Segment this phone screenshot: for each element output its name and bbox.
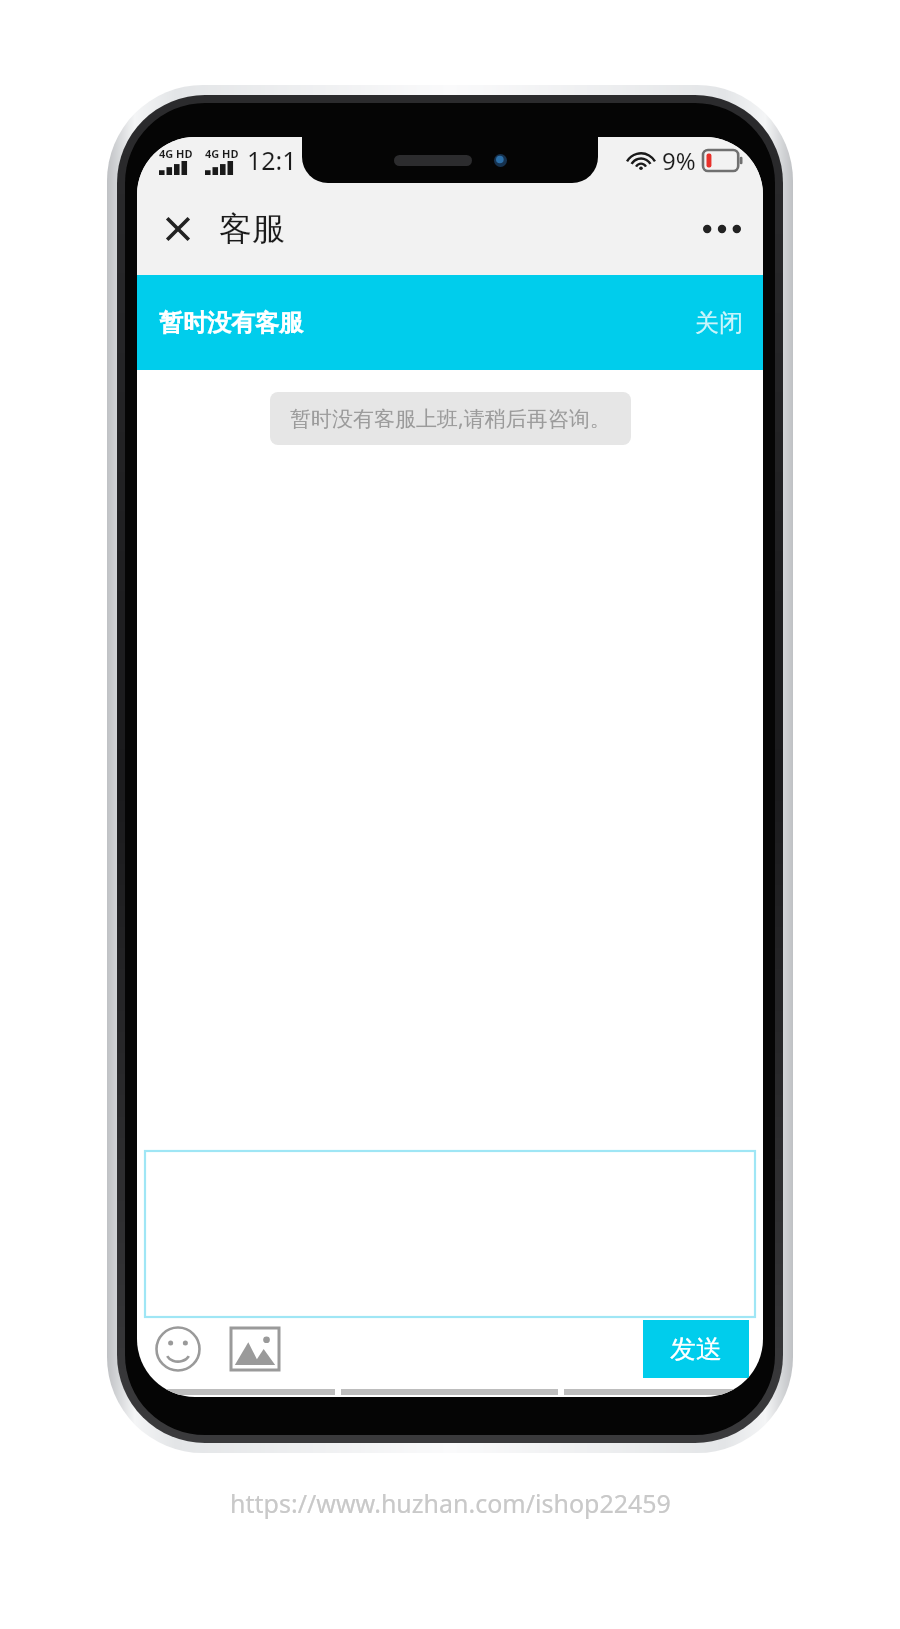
staticText: 12:1 — [247, 143, 297, 177]
staticText: 9% — [662, 144, 696, 177]
button[interactable]: More options — [681, 206, 763, 252]
staticText: 发送 — [670, 1333, 722, 1366]
staticText: 4G HD — [205, 146, 239, 161]
button[interactable]: 发送 — [643, 1320, 749, 1378]
staticText: 关闭 — [695, 308, 743, 338]
staticText: 暂时没有客服 — [159, 308, 303, 338]
staticText: 客服 — [219, 208, 285, 250]
button[interactable]: 关闭 — [695, 308, 763, 338]
button[interactable]: Emoji — [151, 1322, 205, 1376]
button[interactable]: 暂时没有客服上班,请稍后再咨询。 — [270, 392, 631, 445]
button[interactable]: Close — [157, 208, 199, 250]
staticText: 暂时没有客服上班,请稍后再咨询。 — [290, 404, 611, 433]
button[interactable] — [145, 1151, 755, 1317]
button[interactable]: Send image — [227, 1324, 283, 1374]
staticText: 4G HD — [159, 146, 193, 161]
button[interactable]: 暂时没有客服 — [137, 275, 763, 370]
staticText: https://www.huzhan.com/ishop22459 — [230, 1486, 671, 1520]
